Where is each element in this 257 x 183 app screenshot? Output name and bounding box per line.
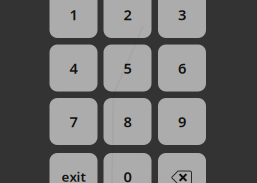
staticText: 8 bbox=[123, 112, 131, 131]
staticText: 0 bbox=[123, 167, 131, 183]
staticText: 5 bbox=[123, 58, 131, 78]
staticText: 3 bbox=[178, 5, 186, 24]
staticText: exit bbox=[61, 168, 85, 183]
staticText: 9 bbox=[178, 112, 186, 131]
staticText: 4 bbox=[69, 58, 77, 78]
staticText: 7 bbox=[69, 112, 77, 131]
staticText: 2 bbox=[123, 5, 131, 24]
staticText: 6 bbox=[178, 58, 186, 78]
staticText: 1 bbox=[69, 5, 77, 24]
